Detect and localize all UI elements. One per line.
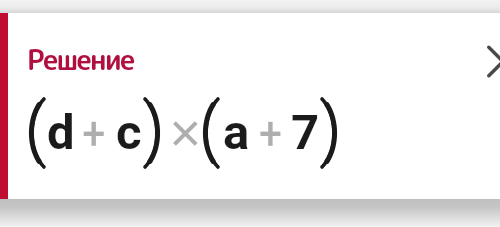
button[interactable] (0, 13, 500, 199)
staticText: 7 (291, 104, 320, 161)
staticText: c (116, 104, 142, 161)
staticText: d (47, 104, 75, 161)
staticText: Решение (27, 40, 134, 79)
staticText: a (223, 104, 250, 161)
button[interactable]: Close (479, 38, 500, 85)
